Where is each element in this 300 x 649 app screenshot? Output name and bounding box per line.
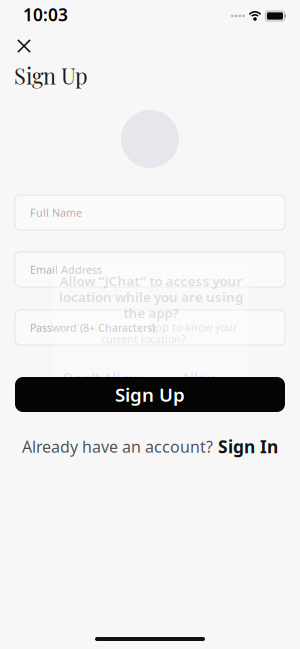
- staticText: app to know your: [149, 320, 237, 334]
- button[interactable]: Sign In: [218, 435, 278, 458]
- staticText: Allow: [181, 368, 219, 387]
- staticText: Allow “JChat” to access your: [59, 272, 242, 290]
- staticText: 10:03: [23, 3, 68, 26]
- staticText: Full Name: [30, 205, 82, 220]
- button[interactable]: Close: [11, 33, 37, 59]
- staticText: Don’t Allow: [62, 368, 141, 387]
- button[interactable]: Add profile photo: [121, 110, 179, 168]
- staticText: the app?: [123, 304, 178, 322]
- staticText: Sign Up: [115, 382, 185, 407]
- staticText: location while you are using: [59, 288, 243, 306]
- staticText: current location?: [101, 332, 186, 346]
- staticText: Sign In: [218, 435, 278, 458]
- staticText: Password (8+ Characters): [30, 320, 155, 335]
- staticText: Already have an account?: [22, 436, 213, 457]
- staticText: Email Address: [30, 262, 102, 277]
- staticText: Sign Up: [14, 61, 88, 90]
- button[interactable]: Sign Up: [15, 377, 285, 412]
